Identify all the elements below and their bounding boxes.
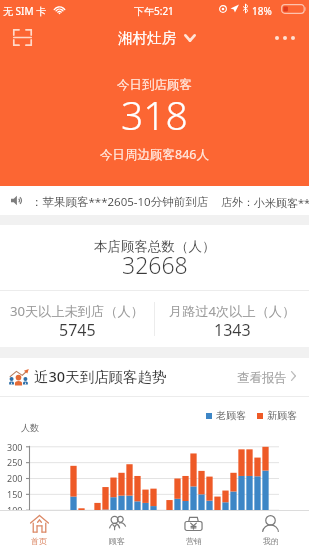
staticText: 今日到店顾客 (117, 77, 192, 93)
staticText: 查看报告 (237, 370, 287, 386)
button[interactable]: 顾客 (78, 511, 155, 550)
staticText: 150 (7, 488, 23, 500)
staticText: 人数 (21, 422, 39, 433)
staticText: 近30天到店顾客趋势 (34, 366, 167, 386)
staticText: 新顾客 (267, 409, 297, 422)
staticText: 下午5:21 (134, 4, 174, 18)
button[interactable]: 首页 (0, 511, 78, 550)
staticText: 30天以上未到店（人） (10, 302, 144, 320)
button[interactable]: Scan (4, 19, 41, 56)
button[interactable]: ：苹果顾客***2605-10分钟前到店 (0, 186, 309, 215)
staticText: 今日周边顾客846人 (100, 146, 209, 163)
staticText: ：苹果顾客***2605-10分钟前到店 (31, 194, 209, 210)
staticText: 300 (7, 441, 23, 453)
button[interactable]: 近30天到店顾客趋势 (0, 358, 309, 396)
staticText: 店外： (221, 195, 254, 209)
staticText: 小米顾客*** (254, 195, 309, 210)
button[interactable]: 营销 (155, 511, 232, 550)
staticText: 老顾客 (216, 409, 246, 422)
button[interactable]: 我的 (232, 511, 309, 550)
staticText: 100 (7, 504, 23, 516)
staticText: 250 (7, 456, 23, 468)
staticText: 营销 (186, 536, 202, 546)
staticText: 18% (252, 4, 272, 18)
staticText: 顾客 (109, 536, 125, 546)
button[interactable]: 湘村灶房 (112, 24, 202, 52)
staticText: 湘村灶房 (118, 29, 176, 47)
staticText: 200 (7, 472, 23, 484)
button[interactable]: More options (269, 23, 301, 53)
staticText: 无 SIM 卡 (3, 4, 47, 18)
staticText: 本店顾客总数（人） (94, 238, 216, 255)
staticText: 首页 (31, 536, 47, 546)
staticText: 32668 (122, 249, 188, 280)
staticText: 我的 (263, 536, 279, 546)
staticText: 318 (121, 88, 188, 141)
staticText: 1343 (214, 319, 251, 341)
staticText: 5745 (59, 319, 96, 341)
staticText: 月路过4次以上（人） (169, 302, 296, 320)
